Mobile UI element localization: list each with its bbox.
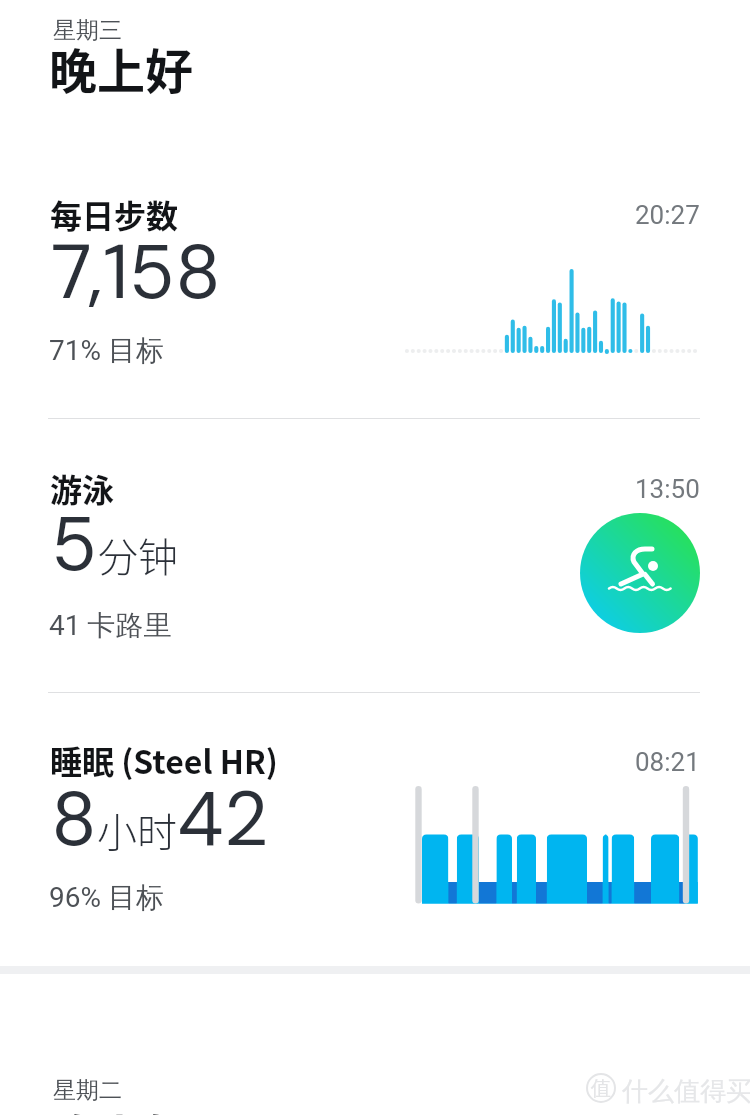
staticText: 96% 目标 xyxy=(49,880,164,915)
staticText: 晚上好 xyxy=(49,33,194,103)
staticText: 每日步数 xyxy=(50,191,179,237)
button[interactable]: 游泳 xyxy=(0,462,750,652)
staticText: 13:50 xyxy=(635,474,700,504)
staticText: 星期二 xyxy=(53,1076,122,1105)
staticText: 41 卡路里 xyxy=(49,608,172,643)
button[interactable]: 每日步数 xyxy=(0,188,750,378)
staticText: 42 xyxy=(177,770,269,869)
staticText: 星期三 xyxy=(53,16,122,45)
staticText: 7,158 xyxy=(51,223,221,322)
button[interactable]: 睡眠 (Steel HR) xyxy=(0,735,750,925)
staticText: 5 xyxy=(51,495,98,594)
staticText: 20:27 xyxy=(635,200,700,230)
staticText: 8 xyxy=(51,770,97,869)
staticText: 分钟 xyxy=(98,526,178,584)
staticText: 08:21 xyxy=(635,747,700,777)
staticText: 游泳 xyxy=(50,465,115,511)
staticText: 什么值得买 xyxy=(622,1075,750,1108)
staticText: 小时 xyxy=(97,801,177,859)
staticText: 睡眠 (Steel HR) xyxy=(50,737,278,783)
staticText: 71% 目标 xyxy=(49,333,164,368)
staticText: 值 xyxy=(591,1076,611,1101)
staticText: 晚上好 xyxy=(49,1099,194,1115)
button[interactable]: Swimming activity xyxy=(580,513,700,633)
